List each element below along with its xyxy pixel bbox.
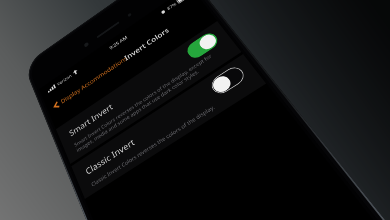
button[interactable]: Classic Invert — [62, 51, 271, 199]
staticText: Display Accommodations — [56, 54, 132, 105]
staticText: Classic Invert — [79, 85, 220, 177]
staticText: 87% — [165, 1, 178, 11]
staticText: Smart Invert — [62, 50, 196, 139]
staticText: Smart Invert Colors reverses the colors … — [67, 43, 235, 153]
button[interactable]: Smart Invert — [183, 29, 222, 62]
staticText: 9:25 AM — [107, 34, 129, 51]
staticText: Classic Invert Colors reverses the color… — [86, 103, 219, 188]
staticText: Verizon — [55, 72, 74, 87]
button[interactable]: Classic Invert — [207, 62, 249, 98]
staticText: Invert Colors — [121, 25, 173, 63]
button[interactable]: Smart Invert — [45, 18, 247, 164]
button[interactable]: Display Accommodations — [46, 52, 134, 112]
